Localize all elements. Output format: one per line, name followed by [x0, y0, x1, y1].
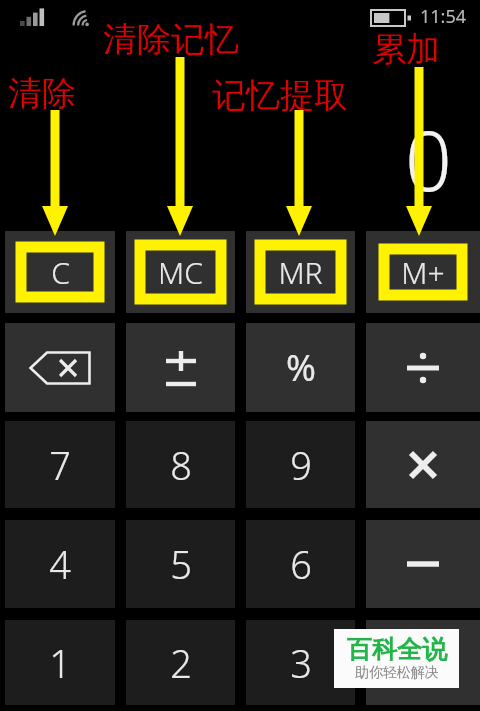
button[interactable]: 4	[5, 520, 115, 608]
button[interactable]: 1	[5, 620, 115, 705]
button[interactable]: Minus	[366, 520, 480, 608]
staticText: M+	[401, 252, 445, 293]
button[interactable]: MR	[246, 231, 355, 313]
button[interactable]: 5	[126, 520, 235, 608]
staticText: 2	[170, 637, 192, 689]
button[interactable]: 7	[5, 421, 115, 508]
button[interactable]: Backspace	[5, 323, 115, 412]
button[interactable]: Plus	[366, 620, 480, 705]
button[interactable]: 3	[246, 620, 355, 705]
staticText: 记忆提取	[212, 74, 348, 117]
staticText: 百科全说	[347, 634, 447, 665]
button[interactable]: C	[5, 231, 115, 313]
button[interactable]: Divide	[366, 323, 480, 412]
staticText: MC	[158, 252, 203, 293]
button[interactable]: 6	[246, 520, 355, 608]
button[interactable]: %	[246, 323, 355, 412]
button[interactable]: 9	[246, 421, 355, 508]
staticText: 6	[290, 538, 312, 590]
staticText: 11:54	[420, 4, 467, 29]
button[interactable]: Multiply	[366, 421, 480, 508]
staticText: 3	[290, 637, 312, 689]
staticText: 助你轻松解决	[355, 664, 439, 682]
staticText: 累加	[372, 28, 440, 71]
staticText: 7	[49, 439, 71, 491]
button[interactable]: M+	[366, 231, 480, 313]
staticText: 8	[170, 439, 192, 491]
button[interactable]: 8	[126, 421, 235, 508]
button[interactable]: Plus minus	[126, 323, 235, 412]
button[interactable]: MC	[126, 231, 235, 313]
staticText: 清除	[8, 72, 76, 115]
button[interactable]: 2	[126, 620, 235, 705]
staticText: %	[286, 343, 316, 392]
staticText: 0	[405, 103, 452, 215]
staticText: C	[51, 252, 70, 293]
staticText: 清除记忆	[103, 18, 239, 61]
staticText: MR	[278, 252, 323, 293]
staticText: 4	[49, 538, 71, 590]
staticText: 9	[290, 439, 312, 491]
staticText: 1	[49, 637, 71, 689]
staticText: 5	[170, 538, 192, 590]
